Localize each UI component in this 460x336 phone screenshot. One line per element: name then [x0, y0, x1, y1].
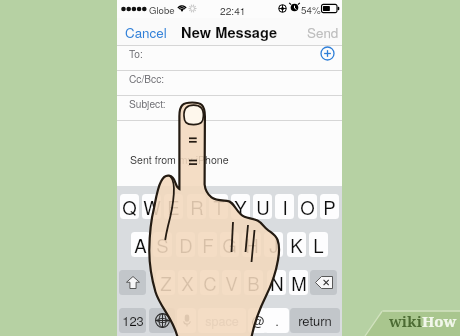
staticText: 22:41 — [220, 3, 246, 18]
staticText: W — [143, 194, 161, 219]
staticText: S — [156, 232, 169, 257]
staticText: F — [202, 232, 214, 257]
staticText: space — [205, 312, 239, 330]
button[interactable]: P — [320, 194, 339, 219]
button[interactable]: Shift — [119, 270, 146, 295]
staticText: Sent from my iPhone — [130, 152, 229, 167]
button[interactable]: K — [287, 232, 306, 257]
button[interactable]: T — [209, 194, 228, 219]
staticText: U — [256, 194, 270, 219]
staticText: J — [269, 232, 279, 257]
staticText: Q — [122, 194, 137, 219]
staticText: . — [275, 311, 279, 330]
staticText: I — [282, 194, 288, 219]
staticText: @ — [251, 311, 265, 330]
button[interactable]: space — [198, 308, 246, 333]
button[interactable]: Cc/Bcc: — [117, 71, 342, 96]
button[interactable]: To: — [117, 46, 342, 71]
button[interactable]: N — [267, 270, 286, 295]
staticText: To: — [129, 46, 143, 61]
staticText: 123 — [122, 311, 144, 330]
button[interactable]: B — [244, 270, 263, 295]
staticText: G — [222, 232, 237, 257]
staticText: L — [313, 232, 324, 257]
button[interactable]: Send — [303, 18, 342, 46]
button[interactable]: Dictation — [177, 308, 196, 333]
button[interactable]: L — [309, 232, 328, 257]
staticText: 54% — [301, 3, 321, 17]
staticText: D — [179, 232, 193, 257]
button[interactable]: return — [290, 308, 340, 333]
staticText: H — [245, 232, 259, 257]
button[interactable]: A — [131, 232, 150, 257]
staticText: O — [300, 194, 315, 219]
button[interactable]: F — [198, 232, 217, 257]
staticText: M — [291, 270, 307, 295]
button[interactable]: E — [164, 194, 183, 219]
button[interactable]: 123 — [119, 308, 146, 333]
staticText: return — [298, 311, 332, 330]
button[interactable]: U — [253, 194, 272, 219]
button[interactable]: W — [142, 194, 161, 219]
button[interactable]: C — [200, 270, 219, 295]
staticText: N — [270, 270, 284, 295]
staticText: wiki — [389, 311, 422, 331]
button[interactable]: G — [220, 232, 239, 257]
button[interactable]: M — [289, 270, 308, 295]
button[interactable]: @ — [248, 308, 267, 333]
staticText: New Message — [181, 22, 278, 43]
button[interactable]: Backspace — [310, 270, 337, 295]
button[interactable]: . — [264, 308, 289, 333]
button[interactable]: D — [176, 232, 195, 257]
staticText: P — [323, 194, 336, 219]
button[interactable]: Y — [231, 194, 250, 219]
button[interactable]: Add contact — [320, 46, 335, 61]
button[interactable]: I — [275, 194, 294, 219]
button[interactable]: Subject: — [117, 96, 342, 121]
staticText: Cc/Bcc: — [129, 71, 165, 86]
staticText: Globe — [149, 3, 175, 17]
staticText: How — [422, 311, 457, 331]
button[interactable]: O — [298, 194, 317, 219]
button[interactable]: J — [264, 232, 283, 257]
staticText: K — [290, 232, 303, 257]
button[interactable]: Q — [120, 194, 139, 219]
button[interactable]: Switch keyboard — [149, 308, 175, 333]
button[interactable]: Cancel — [120, 18, 172, 46]
button[interactable]: V — [222, 270, 241, 295]
button[interactable]: Z — [156, 270, 175, 295]
staticText: T — [213, 194, 225, 219]
staticText: Subject: — [129, 96, 166, 111]
staticText: Send — [307, 23, 339, 42]
staticText: Y — [234, 194, 247, 219]
button[interactable]: X — [178, 270, 197, 295]
staticText: A — [134, 232, 147, 257]
staticText: Z — [160, 270, 172, 295]
staticText: B — [247, 270, 260, 295]
staticText: V — [225, 270, 238, 295]
staticText: X — [181, 270, 194, 295]
button[interactable]: H — [242, 232, 261, 257]
button[interactable]: R — [187, 194, 206, 219]
button[interactable]: S — [153, 232, 172, 257]
staticText: C — [203, 270, 217, 295]
staticText: Cancel — [125, 23, 167, 42]
staticText: R — [190, 194, 204, 219]
staticText: E — [167, 194, 180, 219]
